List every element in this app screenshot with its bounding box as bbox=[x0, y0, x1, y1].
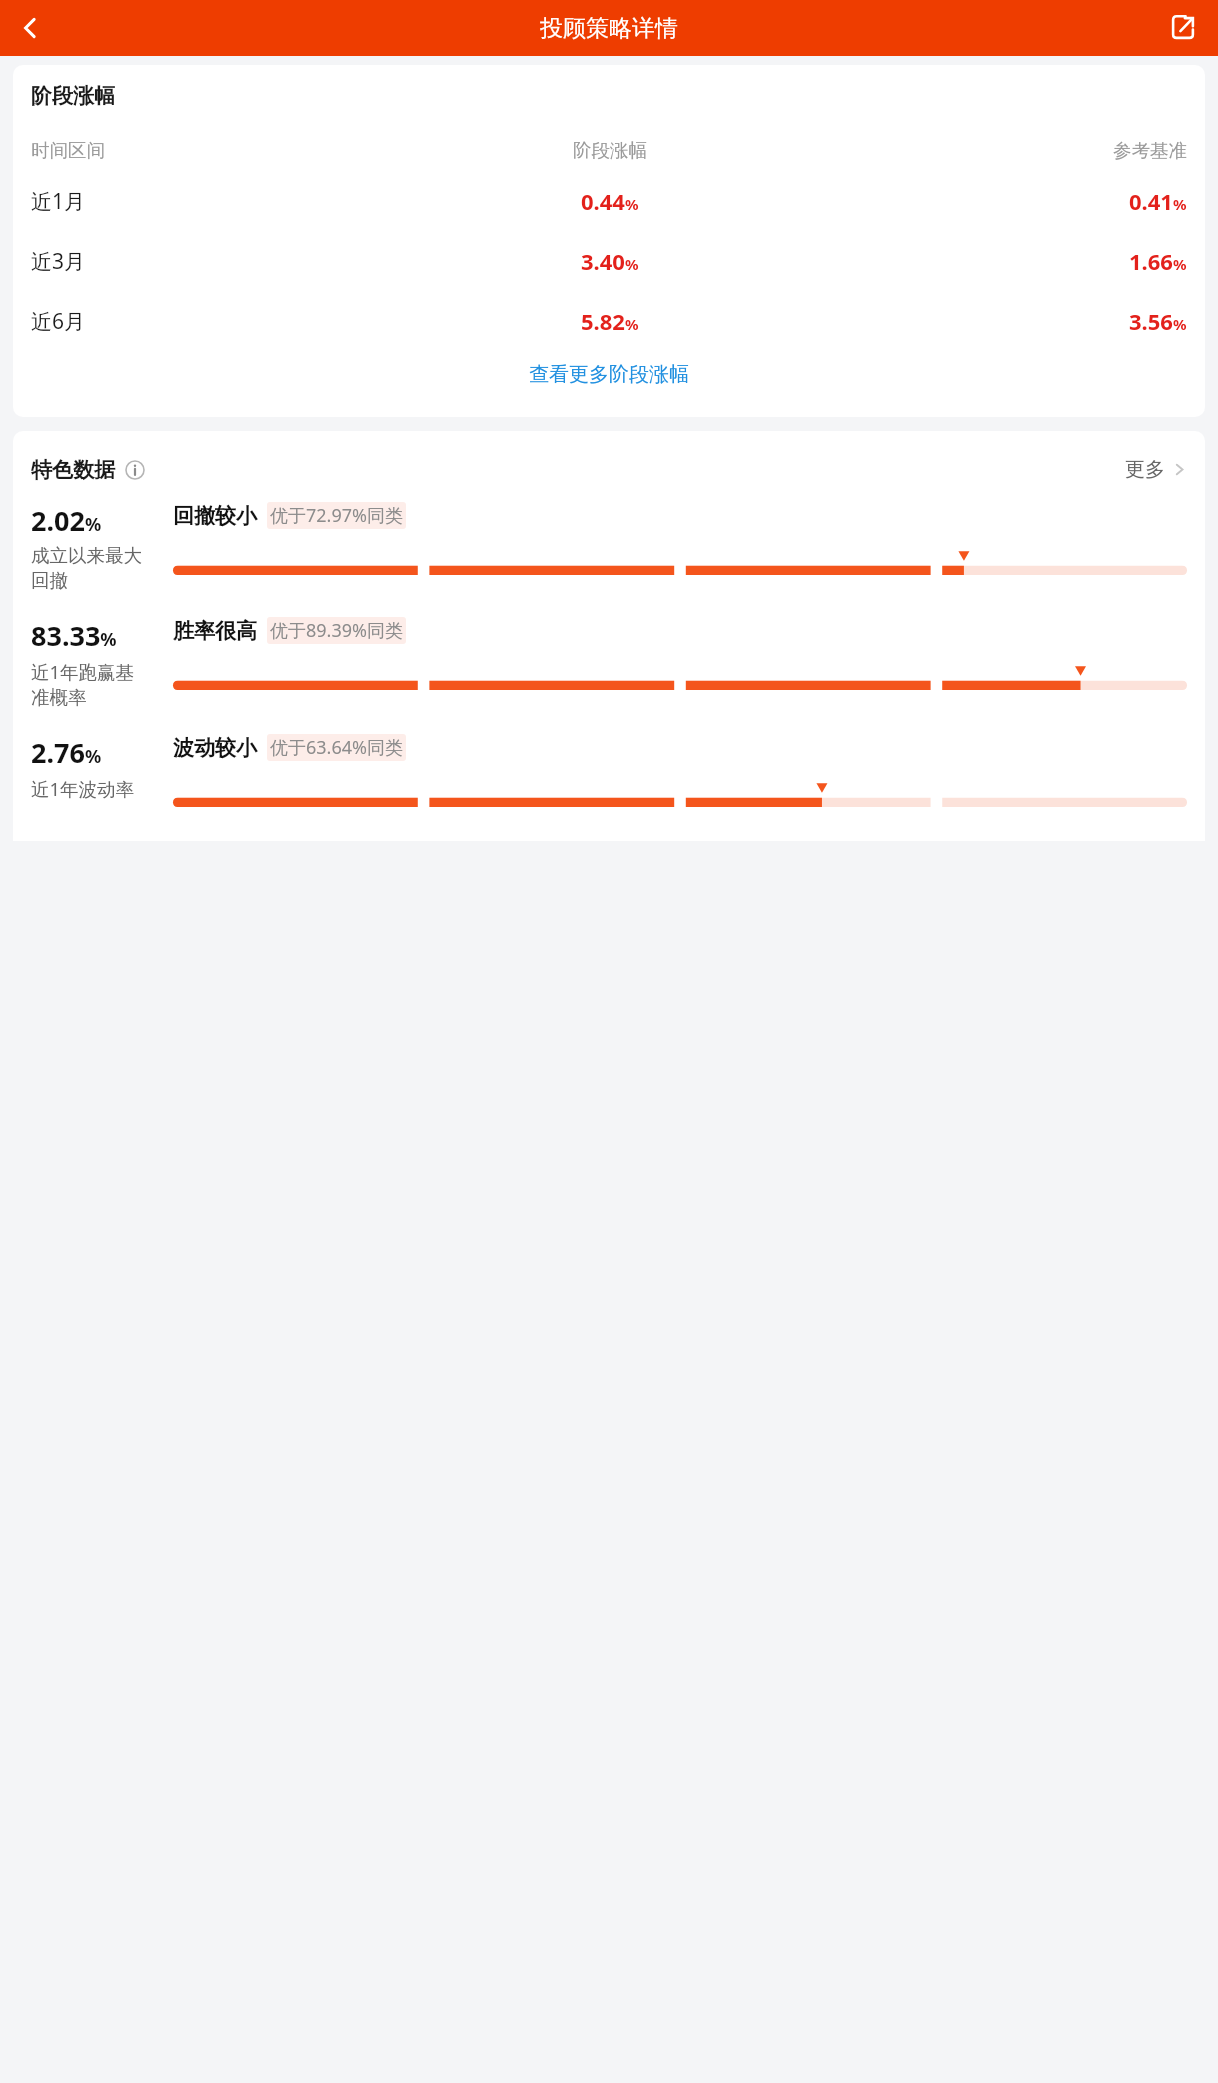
staticText: 优于72.97%同类 bbox=[270, 503, 403, 528]
button[interactable]: Share bbox=[1160, 5, 1206, 51]
staticText: 优于89.39%同类 bbox=[270, 618, 403, 643]
staticText: 更多 bbox=[1125, 457, 1165, 482]
button[interactable]: 近1月 bbox=[13, 186, 1205, 216]
staticText: 近3月 bbox=[31, 247, 86, 276]
staticText: 83.33% bbox=[31, 617, 117, 654]
staticText: 时间区间 bbox=[31, 139, 105, 162]
staticText: 5.82% bbox=[581, 306, 639, 336]
staticText: 成立以来最大 回撤 bbox=[31, 544, 142, 593]
staticText: 3.40% bbox=[581, 246, 639, 276]
staticText: 近1年跑赢基 准概率 bbox=[31, 659, 135, 710]
button[interactable]: Back bbox=[6, 4, 54, 52]
staticText: 胜率很高 bbox=[173, 618, 257, 644]
button[interactable]: 2.76% bbox=[13, 734, 1205, 807]
button[interactable]: 近6月 bbox=[13, 306, 1205, 336]
staticText: 2.02% bbox=[31, 502, 102, 539]
staticText: 阶段涨幅 bbox=[573, 139, 647, 162]
staticText: 近1月 bbox=[31, 187, 86, 216]
staticText: 阶段涨幅 bbox=[31, 83, 115, 109]
staticText: 查看更多阶段涨幅 bbox=[529, 362, 689, 387]
staticText: 参考基准 bbox=[1113, 139, 1187, 162]
staticText: 0.41% bbox=[1129, 186, 1187, 216]
staticText: 3.56% bbox=[1129, 306, 1187, 336]
staticText: 优于63.64%同类 bbox=[270, 735, 403, 760]
staticText: 0.44% bbox=[581, 186, 639, 216]
button[interactable]: 近3月 bbox=[13, 246, 1205, 276]
staticText: 投顾策略详情 bbox=[540, 14, 678, 43]
staticText: 1.66% bbox=[1129, 246, 1187, 276]
staticText: 回撤较小 bbox=[173, 503, 257, 529]
staticText: 特色数据 bbox=[31, 457, 115, 483]
button[interactable]: 2.02% bbox=[13, 502, 1205, 593]
staticText: 近6月 bbox=[31, 307, 86, 336]
button[interactable]: 更多 bbox=[1125, 453, 1187, 486]
button[interactable]: Info bbox=[124, 459, 146, 481]
staticText: 近1年波动率 bbox=[31, 776, 135, 801]
staticText: 波动较小 bbox=[173, 735, 257, 761]
staticText: 2.76% bbox=[31, 734, 102, 771]
button[interactable]: 83.33% bbox=[13, 617, 1205, 710]
button[interactable]: 查看更多阶段涨幅 bbox=[13, 362, 1205, 387]
